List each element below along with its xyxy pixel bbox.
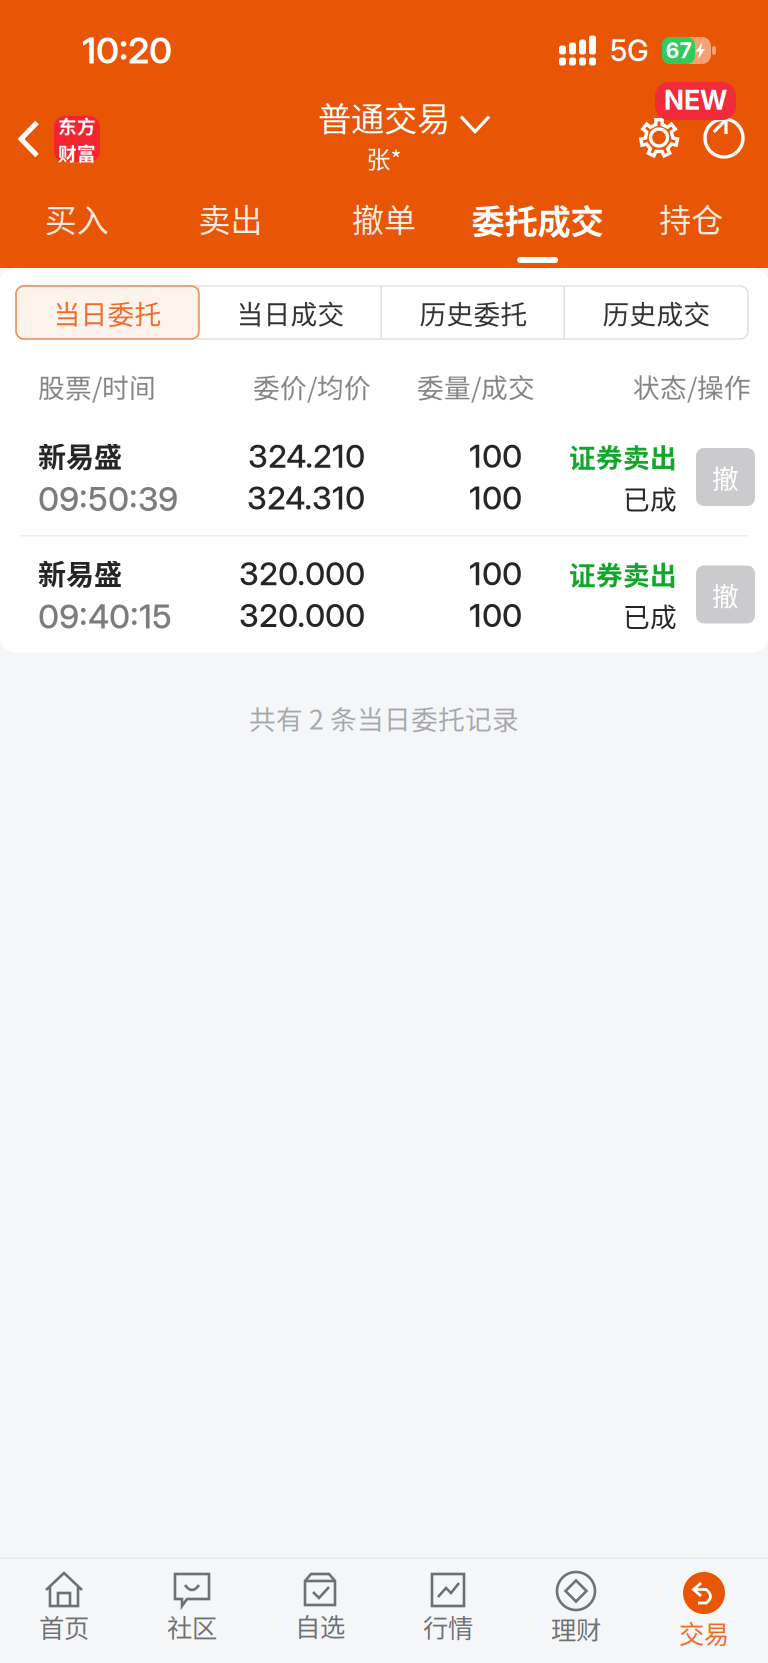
staticText: 历史委托 [419, 293, 527, 332]
staticText: 当日委托 [53, 293, 161, 332]
staticText: 张* [366, 141, 401, 176]
staticText: 已成 [623, 596, 677, 635]
button[interactable]: 理财 [512, 1559, 640, 1663]
staticText: 320.000 [239, 554, 365, 593]
staticText: 5G [610, 33, 649, 68]
staticText: 自选 [295, 1607, 345, 1644]
staticText: 撤 [712, 575, 739, 614]
staticText: NEW [664, 84, 727, 116]
button[interactable]: Back [0, 91, 110, 175]
staticText: 历史成交 [602, 293, 710, 332]
staticText: 股票/时间 [38, 367, 156, 405]
button[interactable]: 委托成交 [461, 182, 614, 268]
staticText: 证券卖出 [569, 554, 677, 593]
button[interactable]: 首页 [0, 1559, 128, 1663]
staticText: 持仓 [659, 195, 723, 241]
staticText: 320.000 [239, 596, 365, 635]
button[interactable]: 撤 [696, 448, 755, 506]
staticText: 首页 [39, 1608, 89, 1645]
button[interactable]: 当日委托 [16, 286, 199, 339]
button[interactable]: 自选 [256, 1559, 384, 1663]
staticText: 证券卖出 [569, 437, 677, 475]
staticText: 普通交易 [318, 92, 450, 141]
staticText: 新易盛 [38, 435, 122, 476]
staticText: 10:20 [82, 29, 172, 72]
staticText: 100 [469, 478, 522, 517]
button[interactable]: Settings [636, 95, 682, 171]
staticText: 委价/均价 [253, 367, 371, 405]
button[interactable]: 买入 [0, 182, 154, 268]
staticText: 撤单 [352, 195, 416, 241]
staticText: 324.310 [247, 478, 365, 517]
button[interactable]: 撤单 [307, 182, 461, 268]
button[interactable]: 行情 [384, 1559, 512, 1663]
staticText: 社区 [167, 1608, 217, 1645]
staticText: 撤 [712, 458, 739, 496]
button[interactable]: 撤 [696, 565, 755, 623]
staticText: 当日成交 [236, 293, 344, 332]
staticText: 交易 [679, 1614, 729, 1651]
button[interactable]: 历史委托 [382, 286, 565, 339]
staticText: 09:40:15 [38, 596, 172, 636]
staticText: 财富 [58, 139, 96, 166]
button[interactable]: 历史成交 [565, 286, 748, 339]
staticText: 委量/成交 [417, 367, 535, 405]
staticText: 09:50:39 [38, 479, 178, 519]
staticText: 行情 [423, 1608, 473, 1645]
staticText: 共有 2 条当日委托记录 [249, 698, 519, 737]
button[interactable]: Refresh [705, 95, 743, 171]
staticText: 100 [469, 437, 522, 475]
staticText: 已成 [623, 478, 677, 517]
staticText: 状态/操作 [633, 367, 751, 405]
staticText: 理财 [551, 1610, 601, 1647]
button[interactable]: 卖出 [154, 182, 307, 268]
staticText: 买入 [45, 195, 109, 241]
staticText: 东方 [58, 112, 96, 139]
button[interactable]: 交易 [640, 1559, 768, 1663]
staticText: 新易盛 [38, 553, 122, 593]
staticText: 67 [665, 38, 691, 63]
staticText: 卖出 [198, 195, 262, 241]
staticText: 100 [469, 596, 522, 635]
button[interactable]: 社区 [128, 1559, 256, 1663]
button[interactable]: 持仓 [614, 182, 768, 268]
staticText: 委托成交 [472, 195, 604, 243]
staticText: 100 [469, 554, 522, 593]
staticText: 324.210 [248, 437, 365, 475]
button[interactable]: 当日成交 [199, 286, 382, 339]
